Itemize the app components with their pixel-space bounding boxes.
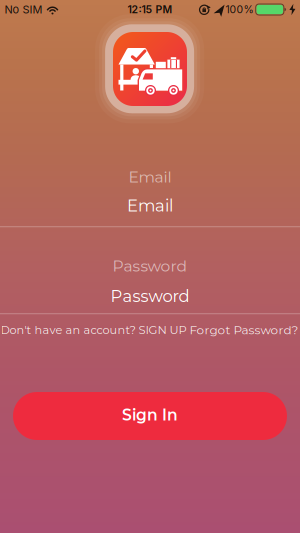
staticText: Password: [112, 257, 187, 275]
staticText: 100%: [225, 3, 253, 16]
staticText: No SIM: [4, 3, 42, 16]
staticText: Email: [128, 168, 171, 186]
button[interactable]: Forgot Password?: [189, 323, 298, 337]
staticText: SIGN UP: [138, 323, 186, 337]
staticText: Email: [127, 195, 173, 215]
staticText: Forgot Password?: [189, 323, 298, 337]
staticText: Don't have an account?: [0, 323, 138, 337]
staticText: 12:15 PM: [127, 3, 172, 16]
button[interactable]: SIGN UP: [138, 323, 186, 337]
button[interactable]: Sign In: [13, 392, 287, 440]
staticText: Sign In: [122, 406, 178, 424]
staticText: Password: [110, 286, 189, 306]
